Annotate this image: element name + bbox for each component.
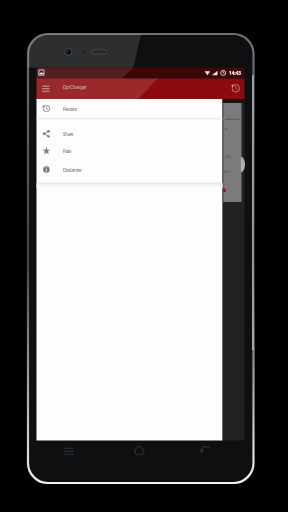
button[interactable] <box>236 156 245 173</box>
staticText: Share <box>63 131 74 137</box>
staticText: e <box>225 126 228 132</box>
staticText: Set <box>224 169 231 175</box>
staticText: Restore <box>63 106 77 112</box>
button[interactable] <box>37 122 223 144</box>
button[interactable] <box>230 82 243 96</box>
button[interactable] <box>40 82 52 95</box>
staticText: Dpi Changer <box>63 84 87 90</box>
staticText: 14:43 <box>229 70 242 76</box>
button[interactable] <box>197 443 215 456</box>
staticText: Disclaimer <box>63 167 82 173</box>
button[interactable] <box>37 143 223 161</box>
button[interactable] <box>37 99 223 119</box>
button[interactable] <box>60 444 78 457</box>
button[interactable] <box>130 443 148 456</box>
staticText: 20 <box>225 154 230 160</box>
staticText: Rate <box>63 148 72 154</box>
button[interactable] <box>37 161 223 179</box>
